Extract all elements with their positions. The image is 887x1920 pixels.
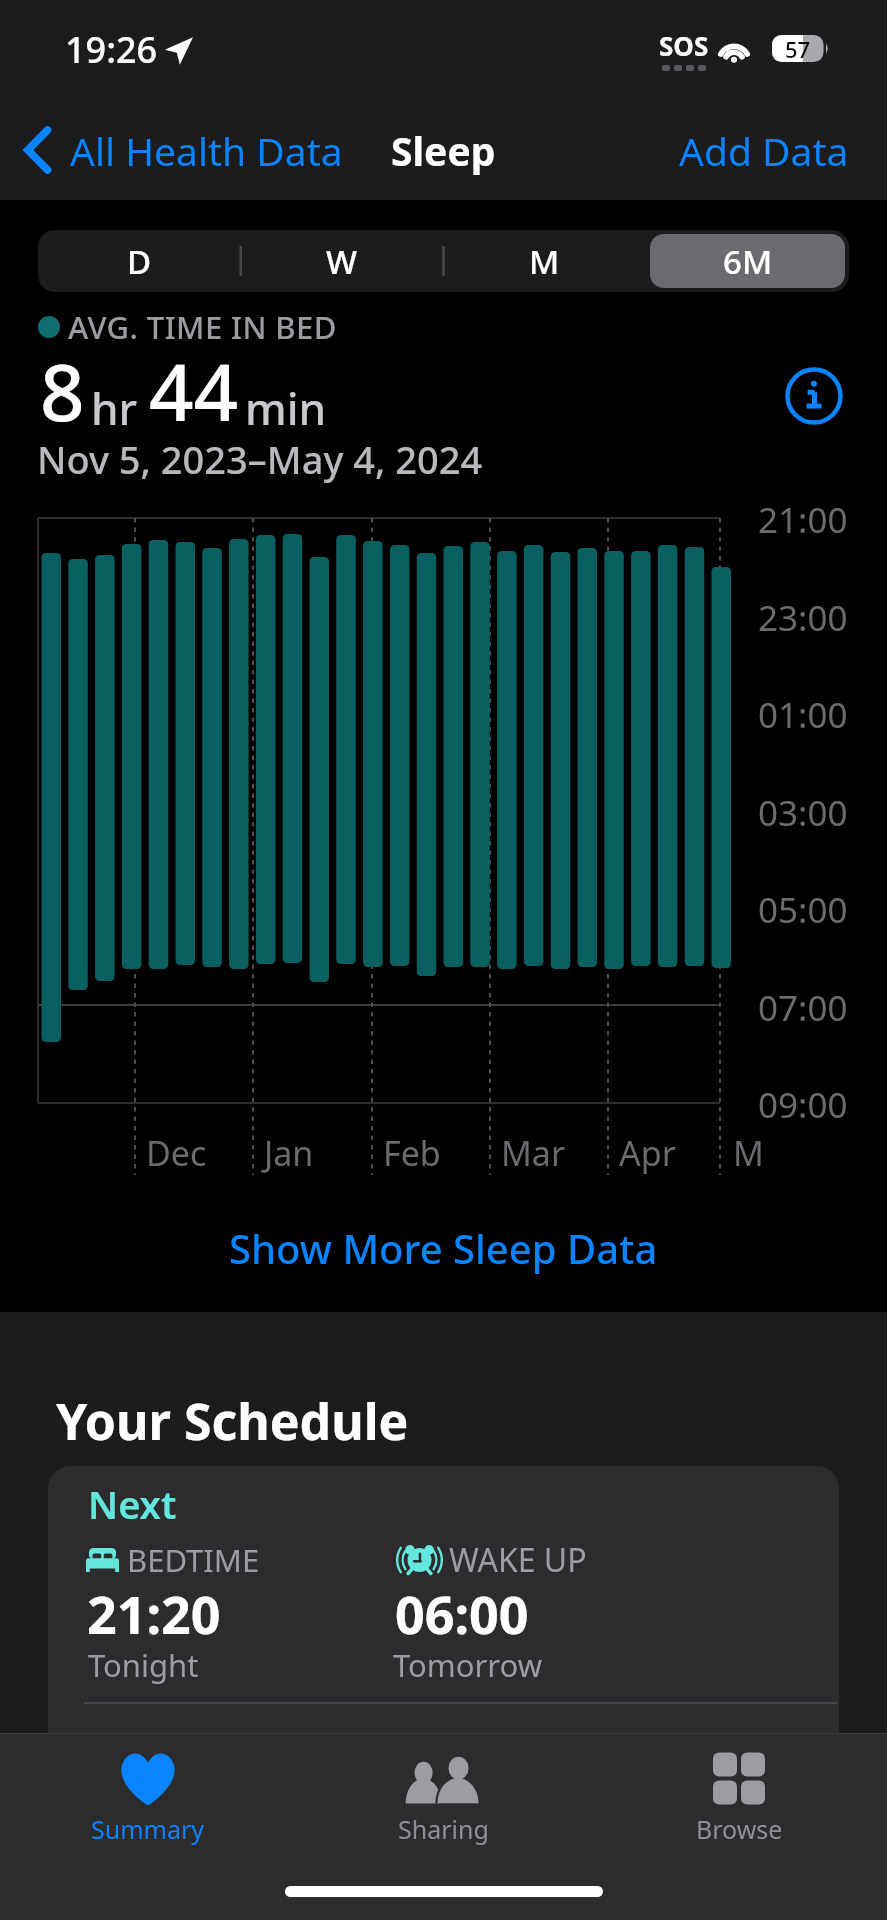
staticText: min (245, 378, 327, 438)
staticText: M (529, 239, 560, 284)
button[interactable]: Sharing (295, 1733, 591, 1853)
staticText: hr (91, 378, 138, 438)
staticText: 21:20 (87, 1578, 221, 1649)
staticText: Apr (619, 1130, 676, 1176)
staticText: 21:00 (758, 496, 848, 544)
staticText: Browse (696, 1812, 783, 1846)
staticText: Your Schedule (56, 1387, 409, 1455)
staticText: 19:26 (65, 25, 158, 74)
button[interactable]: W (244, 234, 439, 288)
staticText: Dec (146, 1130, 207, 1176)
button[interactable]: Show More Sleep Data (0, 1203, 887, 1293)
staticText: Add Data (679, 124, 849, 177)
staticText: D (127, 239, 152, 284)
staticText: WAKE UP (449, 1538, 587, 1582)
button[interactable]: Next (48, 1466, 839, 1920)
button[interactable]: Info (785, 367, 843, 425)
button[interactable]: All Health Data (0, 100, 353, 200)
staticText: 03:00 (758, 789, 848, 837)
staticText: 09:00 (758, 1081, 848, 1129)
button[interactable]: M (447, 234, 642, 288)
button[interactable]: Browse (591, 1733, 887, 1853)
staticText: Jan (264, 1130, 314, 1176)
staticText: Tonight (88, 1644, 199, 1686)
staticText: 44 (149, 338, 239, 444)
staticText: Show More Sleep Data (229, 1221, 658, 1275)
button[interactable]: 6M (650, 234, 845, 288)
staticText: Sleep (391, 124, 496, 177)
button[interactable]: Summary (0, 1733, 295, 1853)
staticText: 8 (40, 338, 85, 444)
staticText: AVG. TIME IN BED (68, 306, 337, 348)
staticText: 01:00 (758, 691, 848, 739)
staticText: M (733, 1130, 764, 1176)
button[interactable]: D (42, 234, 236, 288)
button[interactable]: Add Data (679, 100, 887, 200)
staticText: BEDTIME (127, 1539, 260, 1581)
staticText: W (326, 239, 358, 284)
staticText: SOS (659, 28, 709, 63)
staticText: Sharing (398, 1812, 489, 1846)
staticText: Nov 5, 2023–May 4, 2024 (37, 433, 483, 485)
staticText: 05:00 (758, 886, 848, 934)
staticText: Mar (501, 1130, 565, 1176)
staticText: Summary (91, 1812, 205, 1846)
staticText: All Health Data (70, 124, 343, 177)
staticText: 57 (785, 34, 811, 64)
staticText: 23:00 (758, 594, 848, 642)
staticText: 07:00 (758, 984, 848, 1032)
staticText: Tomorrow (393, 1644, 543, 1686)
staticText: Next (88, 1478, 177, 1530)
staticText: 06:00 (395, 1578, 529, 1649)
staticText: 6M (723, 239, 773, 284)
staticText: Feb (383, 1130, 441, 1176)
